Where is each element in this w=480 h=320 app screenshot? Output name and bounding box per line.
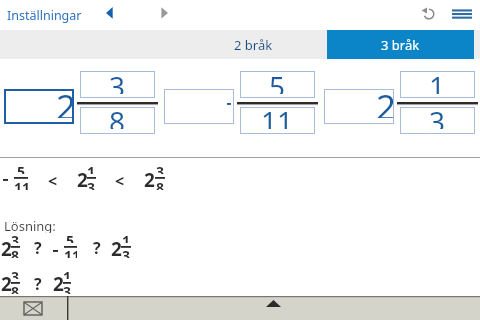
- staticText: 2: [77, 167, 88, 189]
- staticText: 3: [109, 67, 126, 94]
- button[interactable]: 2: [4, 89, 74, 124]
- staticText: <: [48, 170, 58, 187]
- staticText: 5: [269, 67, 286, 94]
- staticText: <: [115, 170, 125, 187]
- button[interactable]: 11: [240, 107, 315, 134]
- staticText: 3: [429, 102, 446, 129]
- button[interactable]: [449, 2, 477, 26]
- button[interactable]: 3 bråk: [327, 30, 474, 59]
- button[interactable]: 3: [80, 71, 155, 98]
- staticText: 2 bråk: [234, 36, 273, 54]
- staticText: 1: [63, 267, 71, 279]
- button[interactable]: 1: [400, 71, 475, 98]
- button[interactable]: 2: [324, 89, 394, 124]
- staticText: 3: [11, 231, 20, 243]
- staticText: ?: [34, 237, 42, 255]
- staticText: 11: [64, 246, 77, 258]
- staticText: 3: [87, 178, 96, 190]
- staticText: 8: [109, 102, 126, 129]
- button[interactable]: 8: [80, 107, 155, 134]
- staticText: 2: [1, 271, 12, 293]
- staticText: 8: [156, 178, 165, 190]
- staticText: 1: [87, 162, 96, 174]
- staticText: 5: [17, 162, 26, 174]
- staticText: 2: [56, 83, 77, 118]
- staticText: 3: [122, 246, 131, 258]
- staticText: 8: [11, 246, 20, 258]
- staticText: 3: [11, 267, 20, 279]
- staticText: Lösning:: [4, 217, 56, 233]
- button[interactable]: [249, 297, 297, 320]
- staticText: 5: [66, 231, 75, 243]
- button[interactable]: [417, 2, 441, 26]
- staticText: 8: [11, 282, 20, 294]
- button[interactable]: 2 bråk: [180, 30, 327, 59]
- staticText: 11: [14, 178, 28, 190]
- staticText: ?: [34, 273, 42, 291]
- button[interactable]: [9, 297, 57, 320]
- button[interactable]: [154, 1, 178, 27]
- staticText: 1: [429, 67, 446, 94]
- staticText: 1: [122, 231, 131, 243]
- staticText: 2: [53, 271, 64, 293]
- button[interactable]: [98, 1, 122, 27]
- staticText: 3: [63, 282, 71, 294]
- button[interactable]: Inställningar: [7, 3, 107, 27]
- staticText: 2: [144, 167, 155, 189]
- button[interactable]: 5: [240, 71, 315, 98]
- staticText: ?: [93, 237, 101, 255]
- button[interactable]: [164, 89, 234, 124]
- button[interactable]: 3: [400, 107, 475, 134]
- staticText: 11: [261, 102, 294, 129]
- staticText: 3 bråk: [381, 36, 420, 54]
- staticText: 2: [111, 236, 122, 258]
- staticText: 3: [156, 162, 165, 174]
- staticText: 2: [1, 236, 12, 258]
- staticText: Inställningar: [7, 7, 82, 24]
- staticText: 2: [376, 83, 397, 118]
